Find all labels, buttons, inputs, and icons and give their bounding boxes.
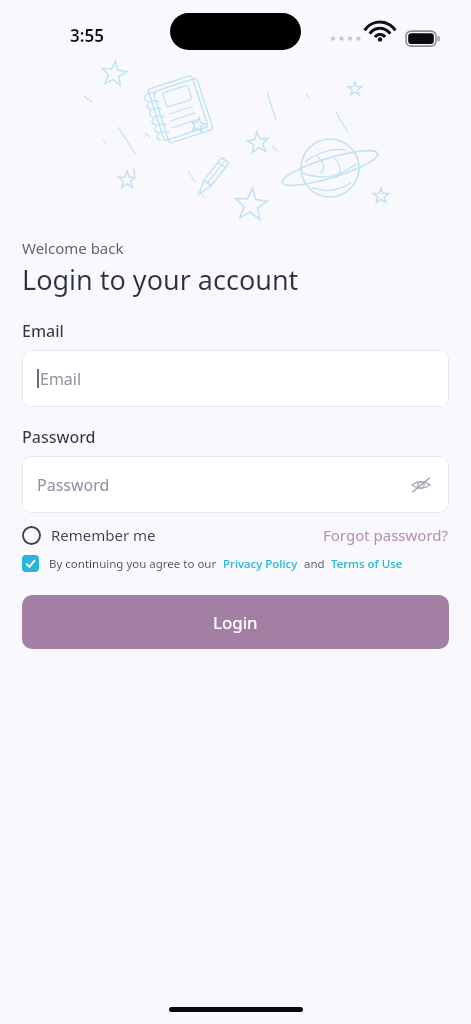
staticText: and	[304, 556, 325, 572]
staticText: By continuing you agree to our	[49, 556, 217, 572]
staticText: Email	[40, 368, 82, 390]
staticText: Terms of Use	[331, 556, 403, 572]
staticText: Password	[37, 474, 110, 496]
staticText: Privacy Policy	[223, 556, 298, 572]
staticText: Login	[213, 611, 258, 634]
staticText: Password	[22, 426, 96, 448]
staticText: 3:55	[70, 24, 104, 47]
button[interactable]: Agree to terms	[22, 555, 39, 572]
staticText: Welcome back	[22, 238, 124, 258]
staticText: Email	[22, 320, 64, 342]
staticText: Forgot password?	[323, 525, 449, 545]
button[interactable]: Forgot password?	[323, 525, 449, 545]
staticText: Remember me	[51, 525, 156, 545]
button[interactable]: Password	[22, 456, 449, 513]
button[interactable]: Remember me	[22, 525, 156, 545]
button[interactable]: Email	[22, 350, 449, 407]
button[interactable]: Privacy Policy	[223, 556, 298, 572]
button[interactable]: Show password	[408, 472, 434, 498]
staticText: Login to your account	[22, 261, 299, 298]
button[interactable]: Login	[22, 595, 449, 649]
button[interactable]: Terms of Use	[331, 556, 403, 572]
